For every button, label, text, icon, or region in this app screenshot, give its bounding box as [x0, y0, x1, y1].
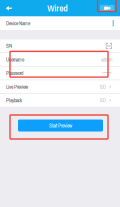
- staticText: Start Preview: [49, 122, 72, 129]
- staticText: Password: [6, 69, 23, 77]
- button[interactable]: Back: [0, 2, 15, 15]
- staticText: SD: [100, 97, 106, 104]
- button[interactable]: Live Preview: [0, 80, 120, 93]
- staticText: Playback: [6, 97, 22, 104]
- staticText: admin: [101, 56, 112, 63]
- button[interactable]: Device Name: [0, 16, 120, 30]
- staticText: Wired: [47, 2, 68, 15]
- button[interactable]: Username: [0, 53, 120, 66]
- staticText: Device Name: [6, 20, 30, 27]
- staticText: SN: [6, 42, 12, 49]
- button[interactable]: Playback: [0, 94, 120, 107]
- button[interactable]: Camera: [100, 2, 120, 14]
- staticText: SD: [100, 83, 106, 90]
- staticText: •••••: [102, 69, 112, 77]
- staticText: Username: [6, 56, 24, 63]
- button[interactable]: Password: [0, 67, 120, 79]
- button[interactable]: Start Preview: [18, 119, 103, 131]
- staticText: Live Preview: [6, 83, 28, 90]
- button[interactable]: SN: [0, 39, 120, 52]
